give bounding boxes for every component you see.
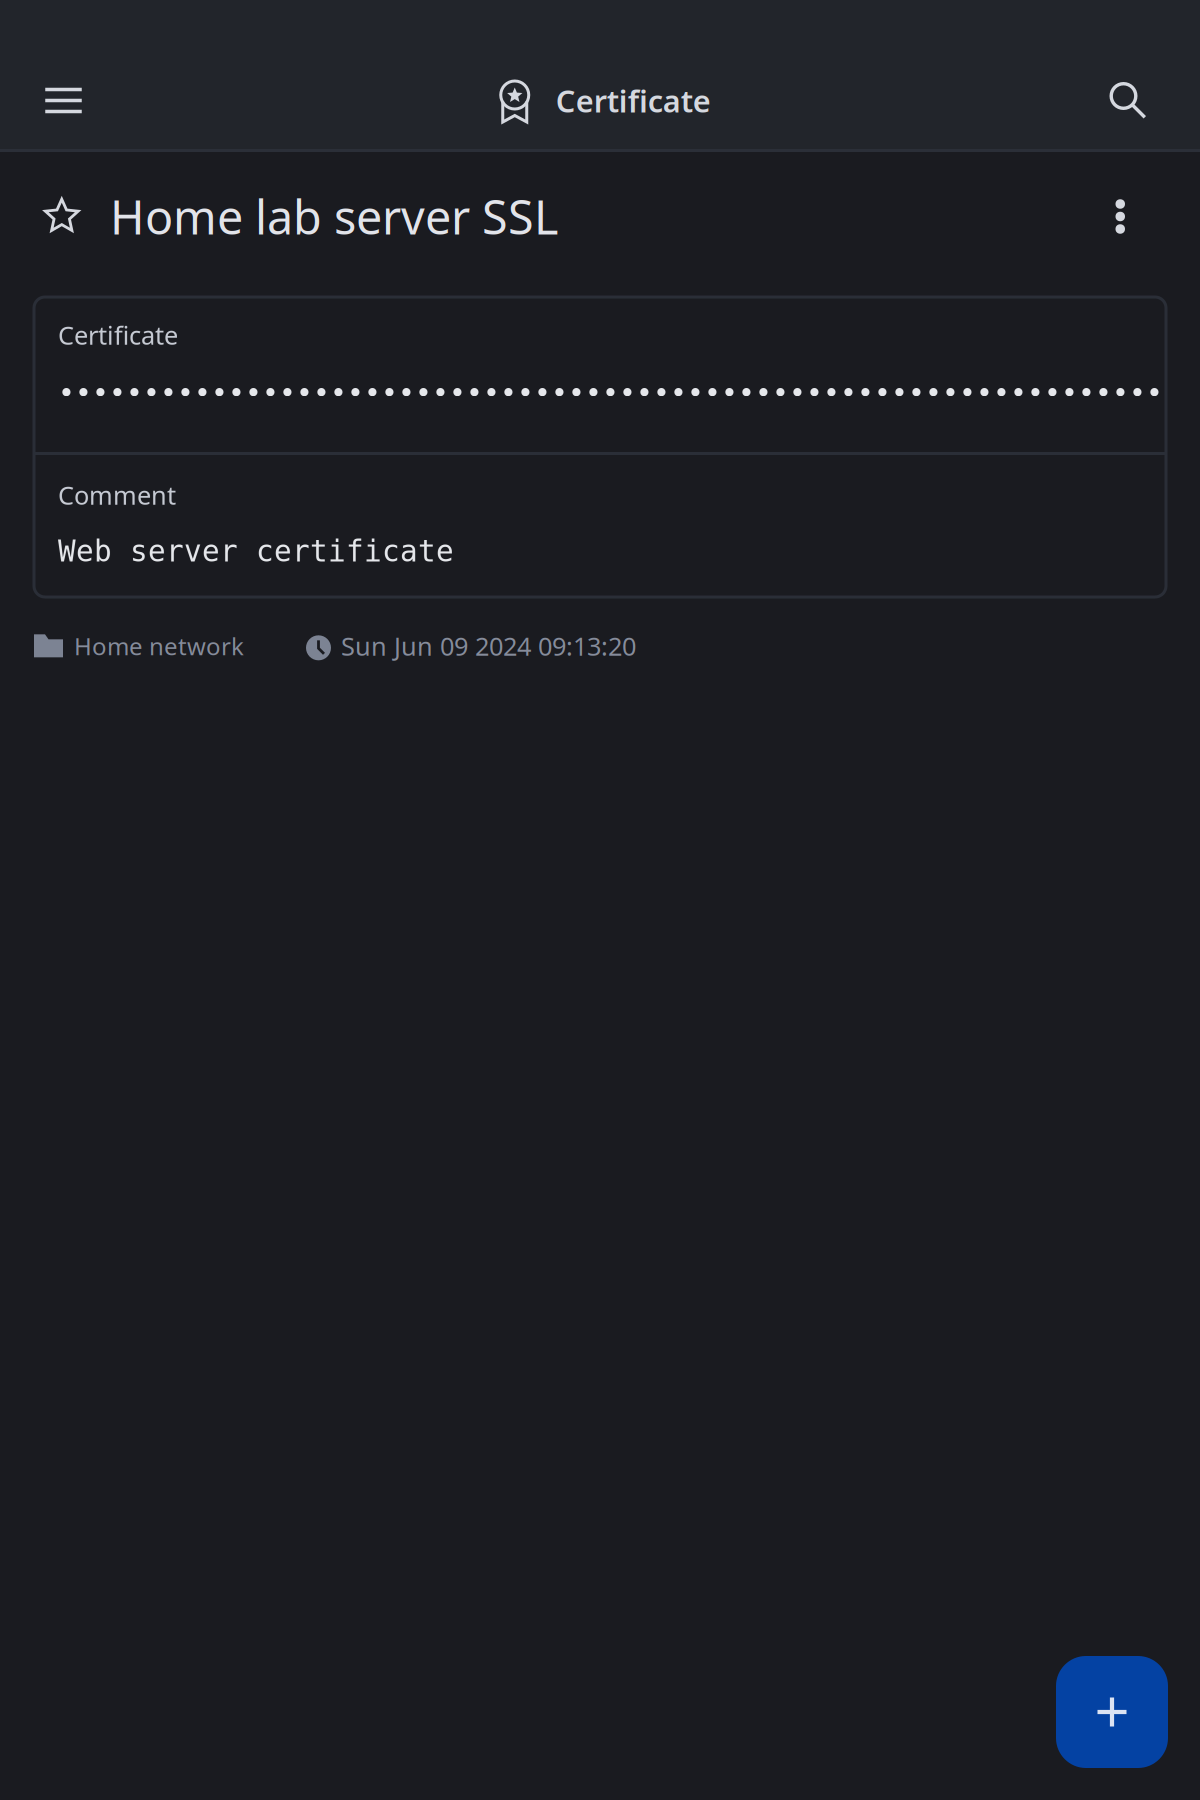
button[interactable]: Add entry xyxy=(1056,1656,1168,1768)
staticText: Home lab server SSL xyxy=(110,185,558,247)
button[interactable]: Favourite xyxy=(0,176,110,257)
staticText: Certificate xyxy=(58,318,178,352)
button[interactable]: Certificate xyxy=(34,297,1166,452)
staticText: Sun Jun 09 2024 09:13:20 xyxy=(341,629,636,663)
staticText: Comment xyxy=(58,478,176,512)
button[interactable]: More options xyxy=(1085,174,1200,259)
staticText: Web server certificate xyxy=(58,535,454,568)
staticText: Home network xyxy=(74,630,244,662)
staticText: ••••••••••••••••••••••••••••••••••••••••… xyxy=(58,377,1200,408)
staticText: Certificate xyxy=(556,80,711,121)
button[interactable]: Comment xyxy=(34,455,1166,597)
button[interactable]: Search xyxy=(1093,65,1163,135)
button[interactable]: Menu xyxy=(28,65,98,135)
